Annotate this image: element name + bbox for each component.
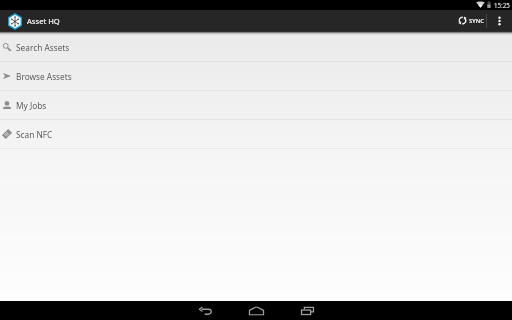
staticText: Asset HQ bbox=[27, 16, 60, 26]
button[interactable]: Browse Assets bbox=[0, 62, 512, 90]
staticText: SYNC bbox=[469, 17, 484, 25]
staticText: 15:25 bbox=[494, 1, 510, 9]
button[interactable]: Back bbox=[180, 301, 231, 320]
staticText: Search Assets bbox=[16, 42, 70, 53]
staticText: Browse Assets bbox=[16, 71, 72, 82]
button[interactable]: Home bbox=[231, 301, 282, 320]
staticText: My Jobs bbox=[16, 100, 47, 111]
button[interactable]: Scan NFC bbox=[0, 120, 512, 148]
button[interactable]: SYNC bbox=[454, 10, 486, 31]
button[interactable]: More options bbox=[487, 10, 512, 31]
button[interactable]: Search Assets bbox=[0, 33, 512, 61]
staticText: Scan NFC bbox=[16, 129, 53, 140]
button[interactable]: My Jobs bbox=[0, 91, 512, 119]
button[interactable]: Recents bbox=[282, 301, 333, 320]
